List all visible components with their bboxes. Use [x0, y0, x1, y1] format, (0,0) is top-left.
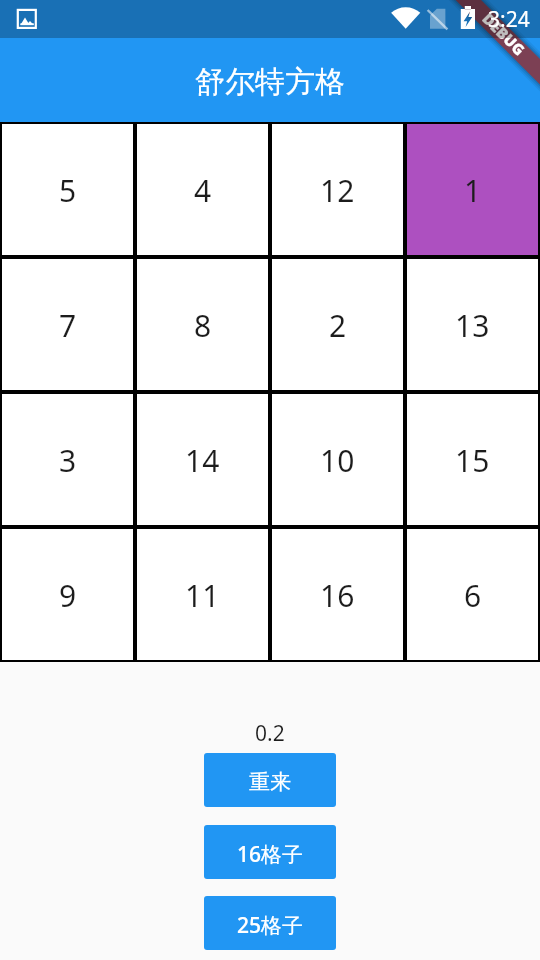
staticText: 16 [320, 575, 355, 616]
staticText: 4 [194, 170, 212, 211]
button[interactable]: 2 [270, 257, 405, 392]
button[interactable]: 7 [0, 257, 135, 392]
staticText: 9 [59, 575, 77, 616]
button[interactable]: 25格子 [204, 896, 336, 950]
staticText: 3 [59, 440, 77, 481]
staticText: 13 [455, 305, 490, 346]
button[interactable]: 重来 [204, 753, 336, 807]
button[interactable]: 14 [135, 392, 270, 527]
staticText: 7 [59, 305, 77, 346]
button[interactable]: 5 [0, 122, 135, 257]
staticText: 2 [329, 305, 347, 346]
button[interactable]: 12 [270, 122, 405, 257]
staticText: 重来 [249, 769, 291, 795]
button[interactable]: 4 [135, 122, 270, 257]
staticText: 12 [320, 170, 355, 211]
button[interactable]: 16格子 [204, 825, 336, 879]
button[interactable]: 8 [135, 257, 270, 392]
staticText: 0.2 [255, 719, 285, 748]
staticText: 6 [464, 575, 482, 616]
button[interactable]: 15 [405, 392, 540, 527]
staticText: 3:24 [488, 5, 530, 34]
button[interactable]: 11 [135, 527, 270, 662]
button[interactable]: 9 [0, 527, 135, 662]
staticText: 10 [320, 440, 355, 481]
staticText: 14 [185, 440, 220, 481]
button[interactable]: 1 [405, 122, 540, 257]
button[interactable]: 16 [270, 527, 405, 662]
staticText: 8 [194, 305, 212, 346]
button[interactable]: 10 [270, 392, 405, 527]
staticText: 11 [185, 575, 220, 616]
staticText: DEBUG [478, 8, 529, 59]
staticText: 25格子 [237, 911, 304, 940]
staticText: 1 [464, 170, 482, 211]
button[interactable]: 13 [405, 257, 540, 392]
staticText: 16格子 [237, 840, 304, 869]
staticText: 15 [455, 440, 490, 481]
staticText: 5 [59, 170, 77, 211]
button[interactable]: 3 [0, 392, 135, 527]
staticText: 舒尔特方格 [195, 63, 345, 101]
button[interactable]: 6 [405, 527, 540, 662]
